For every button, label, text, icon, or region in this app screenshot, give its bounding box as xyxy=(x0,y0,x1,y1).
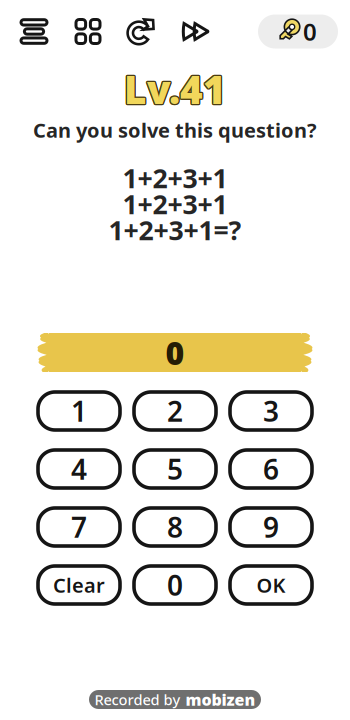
button[interactable]: 0 xyxy=(134,566,216,604)
staticText: 3 xyxy=(263,392,279,430)
staticText: 9 xyxy=(263,508,279,546)
button[interactable]: 9 xyxy=(230,508,312,546)
staticText: 5 xyxy=(167,450,183,488)
button[interactable]: 6 xyxy=(230,450,312,488)
button[interactable]: 4 xyxy=(38,450,120,488)
staticText: Lv.41 xyxy=(123,62,225,114)
button[interactable]: 5 xyxy=(134,450,216,488)
staticText: mobizen xyxy=(185,689,255,710)
staticText: Clear xyxy=(53,572,105,598)
staticText: Lv.41 xyxy=(124,62,226,113)
button[interactable]: Restart level xyxy=(115,14,169,48)
staticText: 1 xyxy=(71,392,87,430)
staticText: 8 xyxy=(167,508,183,546)
staticText: Lv.41 xyxy=(124,63,226,115)
button[interactable]: Levels xyxy=(61,14,115,48)
staticText: 1+2+3+1 xyxy=(122,186,227,222)
staticText: Lv.41 xyxy=(124,64,226,116)
button[interactable]: Clear xyxy=(38,566,120,604)
staticText: OK xyxy=(256,572,285,598)
staticText: 1+2+3+1=? xyxy=(108,212,241,248)
staticText: Lv.41 xyxy=(125,62,227,114)
staticText: Recorded by xyxy=(94,690,180,709)
staticText: Can you solve this question? xyxy=(33,117,317,143)
button[interactable]: Hints: 0 xyxy=(258,14,338,48)
staticText: 7 xyxy=(71,508,87,546)
staticText: 4 xyxy=(71,450,87,488)
staticText: Lv.41 xyxy=(123,64,225,115)
staticText: 2 xyxy=(167,392,183,430)
button[interactable]: 3 xyxy=(230,392,312,430)
button[interactable]: OK xyxy=(230,566,312,604)
staticText: 0 xyxy=(167,566,183,604)
button[interactable]: 2 xyxy=(134,392,216,430)
button[interactable]: 7 xyxy=(38,508,120,546)
button[interactable]: Skip level xyxy=(169,14,223,48)
staticText: 0 xyxy=(303,16,317,47)
staticText: 6 xyxy=(263,450,279,488)
button[interactable]: Menu xyxy=(7,14,61,49)
staticText: Lv.41 xyxy=(123,63,225,115)
staticText: Lv.41 xyxy=(125,64,227,115)
staticText: Lv.41 xyxy=(125,63,227,115)
staticText: 0 xyxy=(165,331,184,374)
button[interactable]: 8 xyxy=(134,508,216,546)
button[interactable]: 1 xyxy=(38,392,120,430)
staticText: 1+2+3+1 xyxy=(122,160,227,196)
